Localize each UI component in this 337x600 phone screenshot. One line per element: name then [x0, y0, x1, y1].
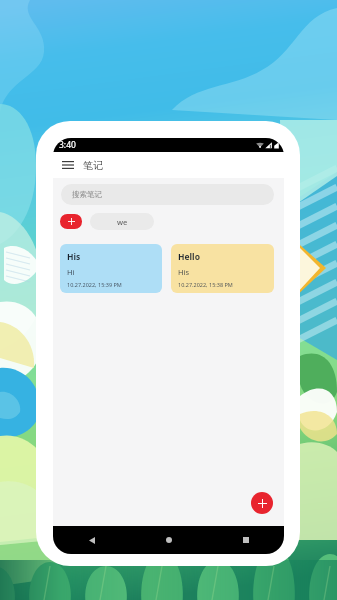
staticText: Hello: [178, 251, 200, 263]
button[interactable]: 搜索笔记: [61, 184, 274, 205]
staticText: Hi: [67, 267, 75, 277]
button[interactable]: Add tag: [60, 214, 82, 229]
button[interactable]: Menu: [58, 155, 78, 175]
staticText: we: [117, 217, 128, 227]
staticText: 10.27.2022, 15:39 PM: [67, 281, 122, 288]
staticText: His: [67, 251, 81, 263]
button[interactable]: Hello: [171, 244, 274, 293]
staticText: 搜索笔记: [72, 190, 102, 199]
button[interactable]: Add note: [251, 492, 273, 514]
button[interactable]: Home: [159, 530, 179, 550]
staticText: 笔记: [83, 159, 103, 172]
staticText: 10.27.2022, 15:38 PM: [178, 281, 233, 288]
button[interactable]: His: [60, 244, 162, 293]
button[interactable]: Recents: [236, 530, 256, 550]
button[interactable]: we: [90, 213, 154, 230]
button[interactable]: Back: [82, 530, 102, 550]
staticText: 3:40: [59, 139, 76, 151]
staticText: His: [178, 267, 190, 277]
